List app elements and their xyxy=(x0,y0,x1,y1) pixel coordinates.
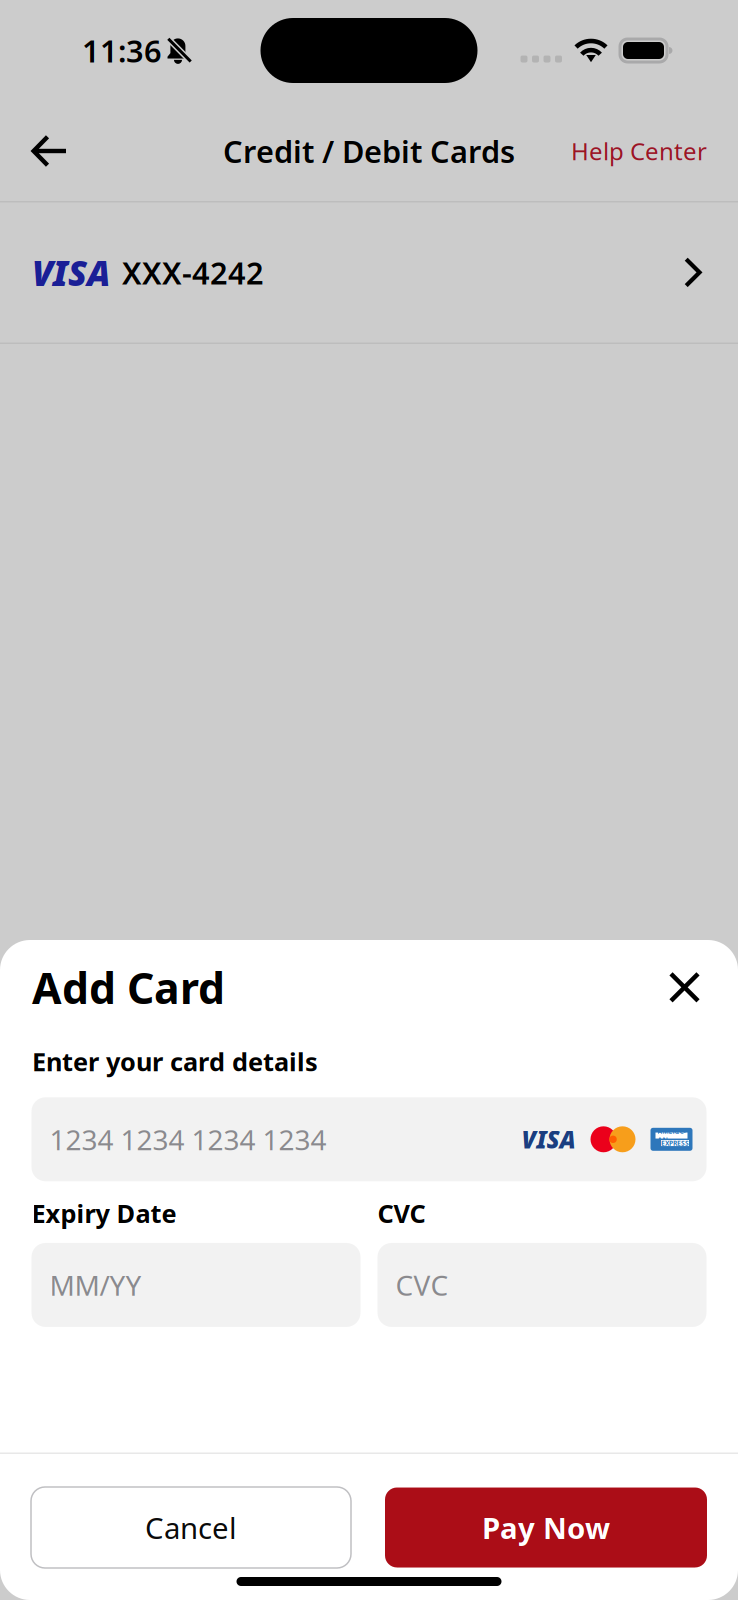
staticText: Add Card xyxy=(32,959,225,1016)
staticText: Cancel xyxy=(145,1508,237,1547)
button[interactable]: Cancel xyxy=(31,1487,351,1568)
button[interactable]: Back xyxy=(0,101,69,201)
button[interactable]: VISA xyxy=(0,202,738,342)
staticText: EXPRESS xyxy=(661,1139,689,1147)
staticText: CVC xyxy=(395,1266,448,1304)
staticText: AMERICAN xyxy=(657,1127,685,1144)
staticText: XXX-4242 xyxy=(122,252,264,293)
button[interactable]: Help Center xyxy=(571,97,738,205)
staticText: Enter your card details xyxy=(32,1045,318,1078)
staticText: 1234 1234 1234 1234 xyxy=(49,1121,326,1158)
staticText: VISA xyxy=(521,1123,575,1155)
staticText: CVC xyxy=(377,1196,425,1230)
button[interactable]: Close xyxy=(660,963,709,1012)
staticText: VISA xyxy=(32,249,110,295)
staticText: 11:36 xyxy=(82,30,162,71)
button[interactable]: Pay Now xyxy=(385,1487,707,1567)
staticText: MM/YY xyxy=(49,1266,141,1304)
staticText: Expiry Date xyxy=(31,1196,176,1230)
staticText: Credit / Debit Cards xyxy=(223,131,515,171)
staticText: Help Center xyxy=(571,135,707,167)
staticText: Pay Now xyxy=(482,1508,610,1547)
